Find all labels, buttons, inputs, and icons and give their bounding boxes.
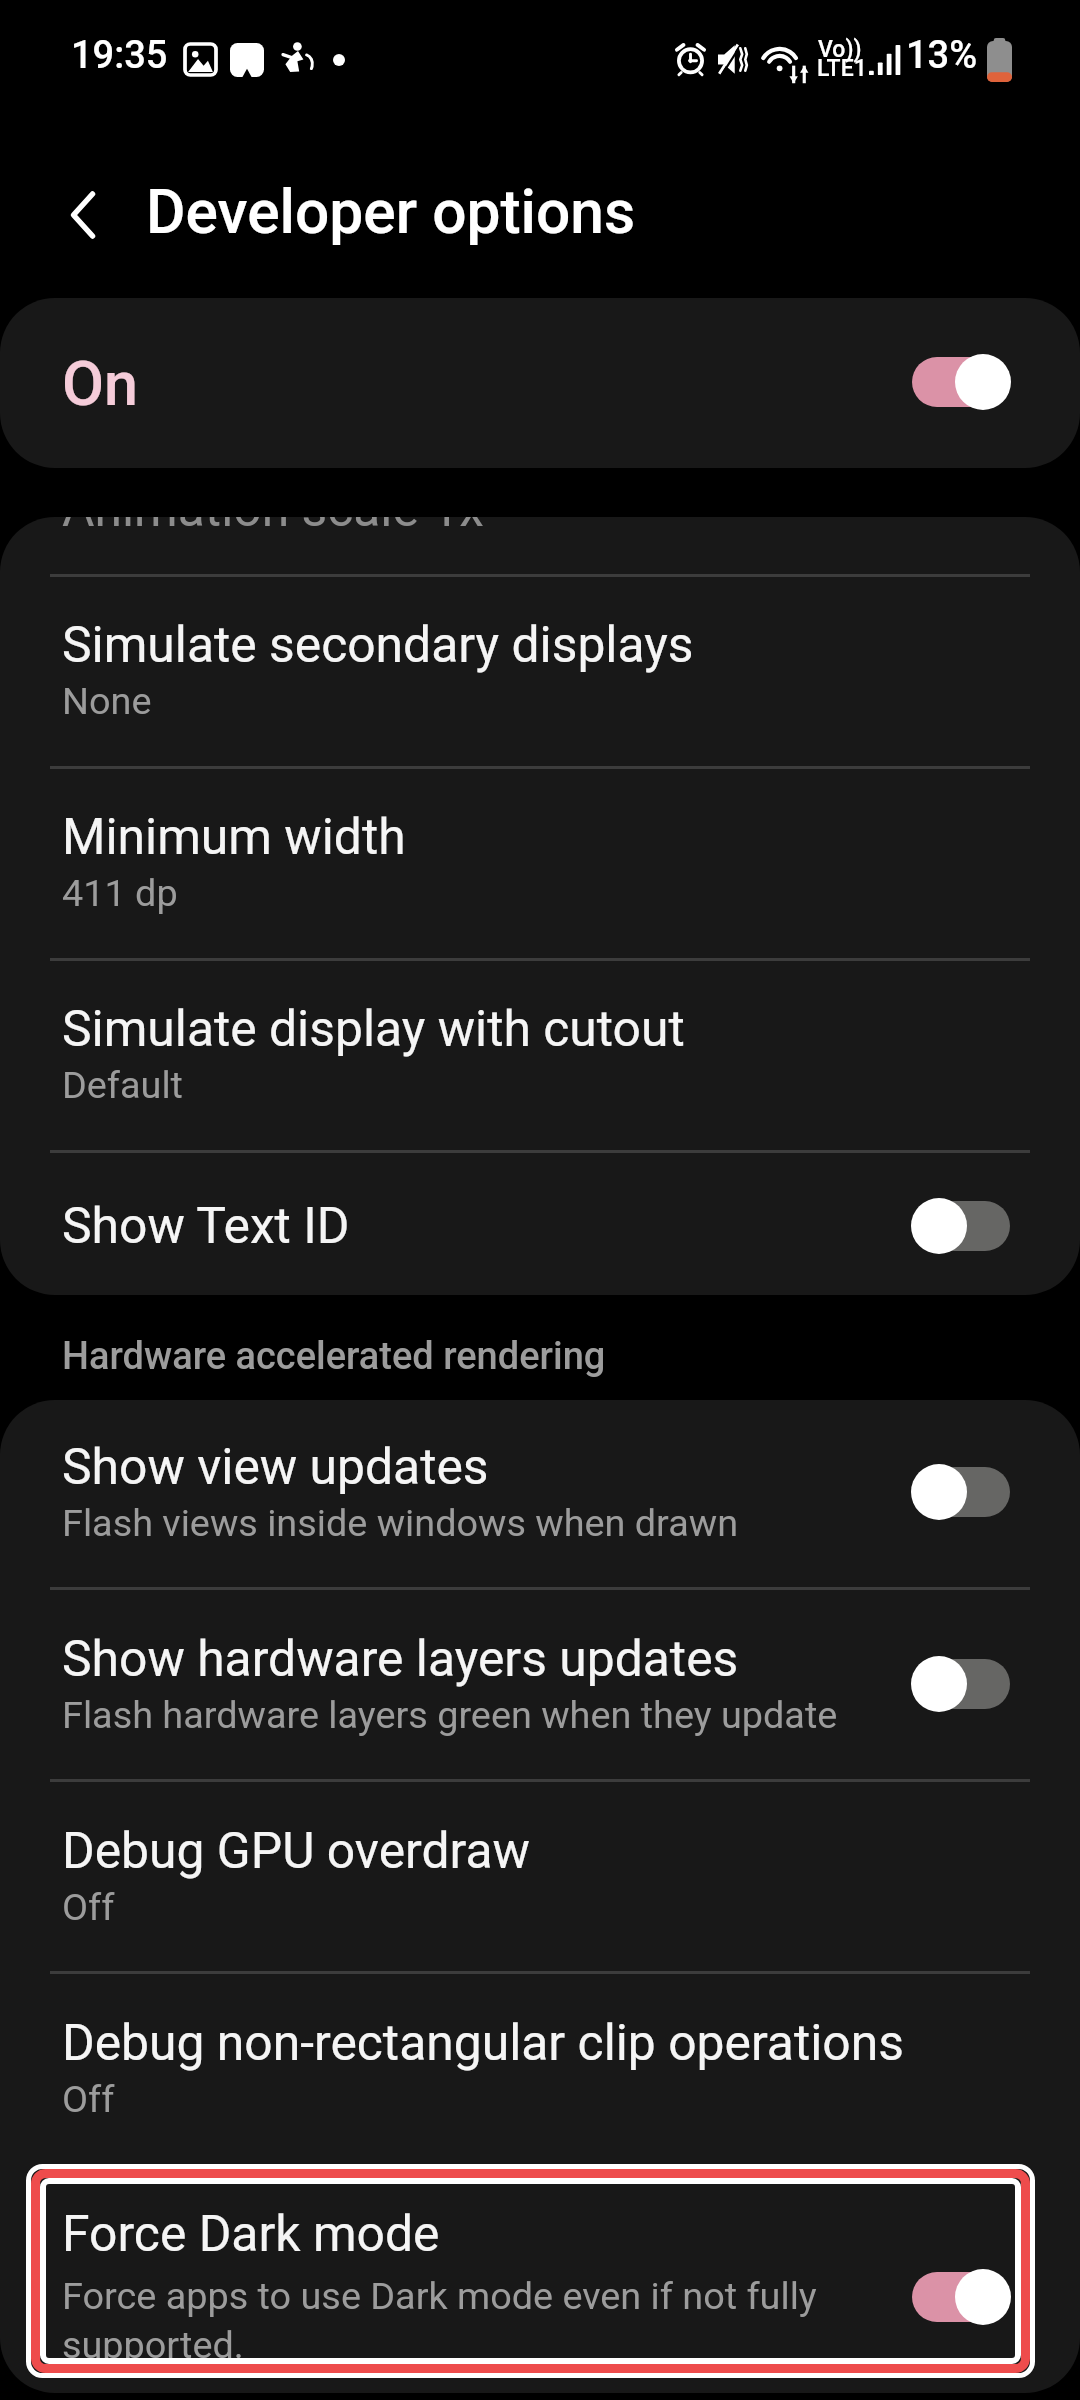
- staticText: Debug non-rectangular clip operations: [62, 2014, 1080, 2072]
- staticText: Force apps to use Dark mode even if not …: [62, 2274, 852, 2367]
- staticText: Show view updates: [62, 1438, 1080, 1496]
- staticText: Flash views inside windows when drawn: [62, 1501, 1080, 1545]
- button[interactable]: Navigate up: [37, 169, 129, 261]
- staticText: Default: [62, 1063, 1080, 1107]
- button[interactable]: Switch off: [902, 1452, 1020, 1532]
- staticText: Minimum width: [62, 808, 1080, 866]
- staticText: Off: [62, 2077, 1080, 2121]
- staticText: Show Text ID: [62, 1197, 1080, 1255]
- staticText: 411 dp: [62, 871, 1080, 915]
- staticText: Debug GPU overdraw: [62, 1822, 1080, 1880]
- staticText: 13%: [906, 33, 1080, 78]
- staticText: Flash hardware layers green when they up…: [62, 1693, 1080, 1737]
- staticText: None: [62, 679, 1080, 723]
- staticText: Vo)): [818, 36, 1080, 63]
- staticText: Simulate display with cutout: [62, 1000, 1080, 1058]
- staticText: LTE1: [817, 55, 1080, 82]
- staticText: Force Dark mode: [62, 2205, 1080, 2263]
- staticText: 19:35: [71, 33, 1080, 78]
- button[interactable]: Switch off: [902, 1186, 1020, 1266]
- staticText: On: [62, 348, 1080, 419]
- staticText: Hardware accelerated rendering: [62, 1334, 1080, 1379]
- button[interactable]: [0, 298, 1080, 468]
- staticText: Off: [62, 1885, 1080, 1929]
- button[interactable]: Switch on: [902, 342, 1020, 422]
- button[interactable]: Switch on: [902, 2257, 1020, 2337]
- staticText: Animation scale 1x: [62, 517, 1080, 538]
- staticText: Developer options: [146, 177, 1080, 248]
- button[interactable]: Force Dark mode setting, highlighted: [26, 2164, 1035, 2378]
- staticText: Simulate secondary displays: [62, 616, 1080, 674]
- button[interactable]: Switch off: [902, 1644, 1020, 1724]
- staticText: Show hardware layers updates: [62, 1630, 1080, 1688]
